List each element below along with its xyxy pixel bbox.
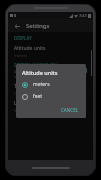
button[interactable]: feet bbox=[22, 93, 82, 100]
staticText: meters bbox=[33, 81, 50, 88]
staticText: Altitude units bbox=[22, 69, 58, 76]
staticText: feet bbox=[33, 93, 43, 100]
staticText: Theme bbox=[14, 83, 31, 90]
button[interactable]: CANCEL bbox=[58, 105, 82, 115]
staticText: Settings bbox=[26, 22, 50, 30]
staticText: CANCEL bbox=[61, 107, 79, 113]
button[interactable]: Theme bbox=[8, 82, 93, 97]
button[interactable]: Language bbox=[8, 99, 93, 114]
staticText: meters bbox=[14, 53, 28, 58]
staticText: Always keep screen on while the applicat… bbox=[14, 69, 80, 79]
staticText: 7:41 bbox=[79, 13, 87, 18]
staticText: Language bbox=[14, 100, 38, 107]
button[interactable]: Back bbox=[12, 21, 22, 31]
button[interactable]: SCREEN ALWAYS ON bbox=[8, 61, 93, 80]
staticText: Altitude units bbox=[14, 45, 46, 52]
staticText: Dark bbox=[14, 91, 23, 96]
staticText: SCREEN ALWAYS ON bbox=[14, 62, 57, 68]
staticText: System default bbox=[14, 108, 42, 113]
button[interactable]: Altitude units bbox=[8, 44, 93, 59]
button[interactable]: meters bbox=[22, 81, 82, 88]
staticText: DISPLAY bbox=[14, 35, 32, 41]
